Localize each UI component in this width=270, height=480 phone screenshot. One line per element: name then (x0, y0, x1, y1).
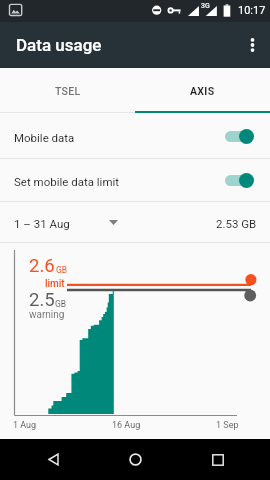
staticText: 2.6 (29, 255, 55, 277)
staticText: GB (55, 299, 67, 309)
button[interactable]: AXIS (135, 68, 270, 113)
button[interactable]: Back (23, 439, 83, 480)
button[interactable]: Mobile data (0, 113, 270, 159)
staticText: TSEL (55, 85, 81, 97)
button[interactable]: More options (234, 22, 270, 68)
staticText: limit (45, 278, 65, 290)
button[interactable]: 1 – 31 Aug (14, 208, 118, 237)
staticText: 2.5 (29, 289, 55, 311)
staticText: 3G (201, 2, 210, 10)
staticText: 1 Aug (13, 420, 37, 431)
button[interactable]: Recent apps (188, 439, 248, 480)
button[interactable]: Home (105, 439, 165, 480)
staticText: AXIS (190, 85, 215, 97)
staticText: 10:17 (238, 4, 266, 17)
button[interactable]: Set mobile data limit (0, 159, 270, 202)
staticText: Data usage (16, 35, 102, 55)
staticText: 1 – 31 Aug (14, 217, 70, 230)
staticText: 1 Sep (216, 420, 239, 431)
staticText: warning (29, 309, 65, 321)
button[interactable]: TSEL (0, 68, 135, 113)
staticText: GB (56, 265, 68, 275)
staticText: 2.53 GB (216, 217, 257, 230)
staticText: Mobile data (14, 131, 225, 144)
staticText: 16 Aug (112, 420, 141, 431)
staticText: Set mobile data limit (14, 175, 225, 188)
